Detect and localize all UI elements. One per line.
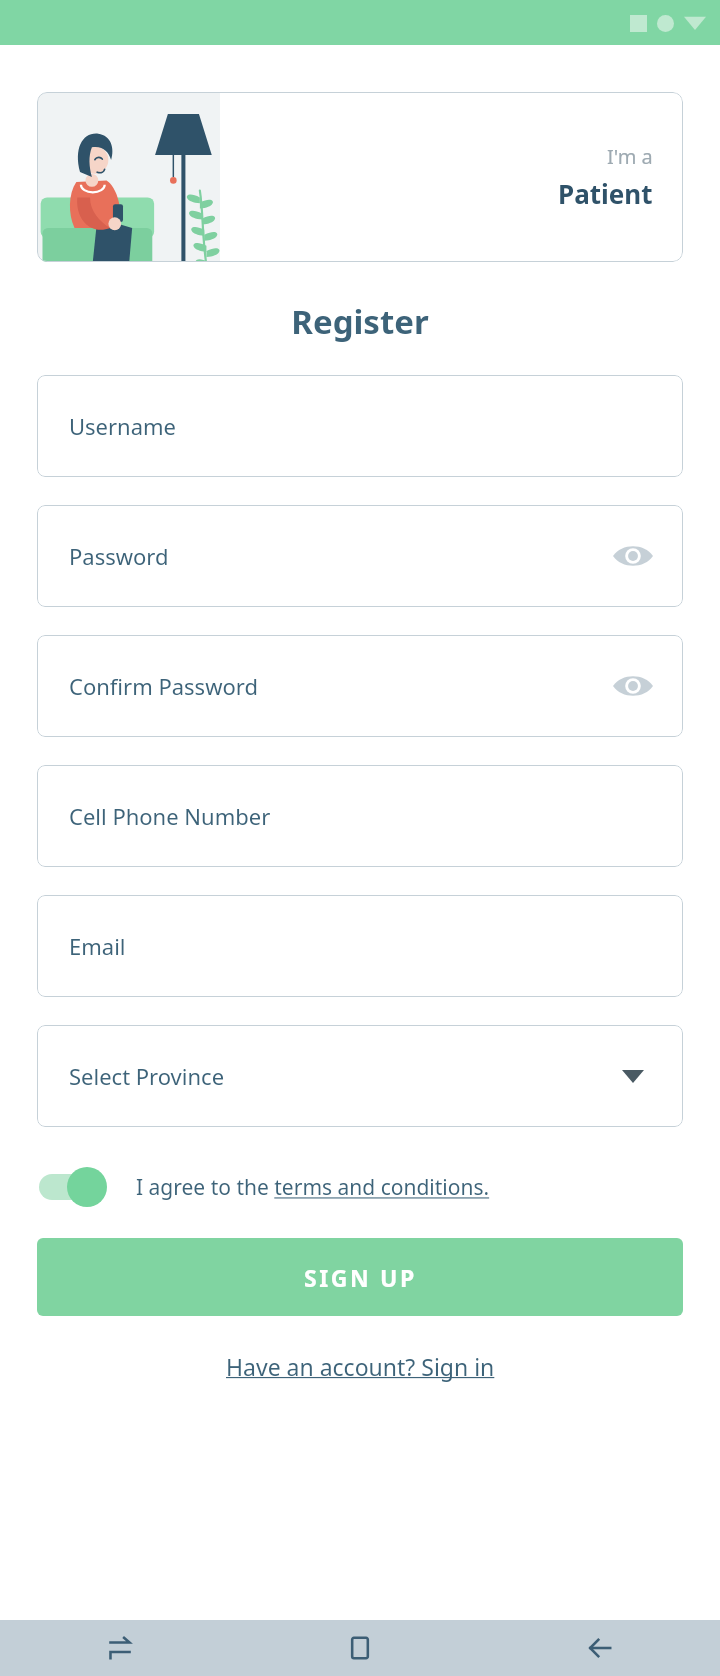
button[interactable]: Confirm Password [37, 635, 683, 737]
staticText: Username [69, 411, 177, 441]
button[interactable]: Back [480, 1620, 720, 1676]
staticText: SIGN UP [304, 1262, 417, 1293]
staticText: I agree to the terms and conditions. [136, 1173, 490, 1202]
staticText: Cell Phone Number [69, 801, 271, 831]
staticText: Password [69, 541, 169, 571]
button[interactable]: Recents [0, 1620, 240, 1676]
button[interactable]: Cell Phone Number [37, 765, 683, 867]
staticText: Select Province [69, 1061, 225, 1091]
button[interactable]: Have an account? Sign in [218, 1347, 503, 1386]
button[interactable]: Select Province [37, 1025, 683, 1127]
button[interactable]: SIGN UP [37, 1238, 683, 1316]
staticText: I'm a [607, 143, 653, 170]
button[interactable]: Show password [611, 534, 655, 578]
button[interactable]: Password [37, 505, 683, 607]
staticText: Have an account? Sign in [226, 1351, 495, 1382]
button[interactable]: Username [37, 375, 683, 477]
button[interactable]: Agree to terms toggle [37, 1165, 111, 1209]
staticText: Confirm Password [69, 671, 258, 701]
button[interactable]: I'm a [37, 92, 683, 262]
staticText: Patient [558, 176, 653, 211]
staticText: Register [0, 299, 720, 344]
button[interactable]: Home [240, 1620, 480, 1676]
staticText: Email [69, 931, 126, 961]
button[interactable]: Show password [611, 664, 655, 708]
button[interactable]: Email [37, 895, 683, 997]
button[interactable]: Open province list [613, 1056, 653, 1096]
